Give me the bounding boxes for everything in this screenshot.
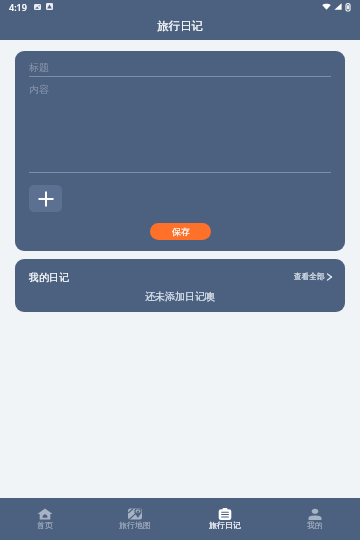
staticText: 旅行日记: [209, 520, 241, 530]
staticText: 标题: [29, 61, 49, 74]
staticText: 内容: [29, 83, 49, 96]
staticText: 还未添加日记噢: [145, 290, 215, 303]
button[interactable]: 保存: [150, 223, 211, 240]
button[interactable]: 我的: [270, 498, 360, 540]
staticText: 保存: [172, 226, 190, 237]
button[interactable]: 旅行地图: [90, 498, 180, 540]
button[interactable]: 首页: [0, 498, 90, 540]
staticText: 4:19: [9, 1, 27, 13]
staticText: 我的日记: [29, 271, 69, 284]
button[interactable]: 查看全部: [294, 272, 332, 282]
staticText: 旅行地图: [119, 520, 151, 530]
staticText: 旅行日记: [157, 19, 203, 33]
button[interactable]: 旅行日记: [180, 498, 270, 540]
staticText: 查看全部: [294, 272, 325, 282]
staticText: 首页: [37, 520, 53, 530]
button[interactable]: 标题: [29, 51, 331, 76]
button[interactable]: Add photo: [29, 185, 62, 212]
staticText: 我的: [307, 520, 323, 530]
